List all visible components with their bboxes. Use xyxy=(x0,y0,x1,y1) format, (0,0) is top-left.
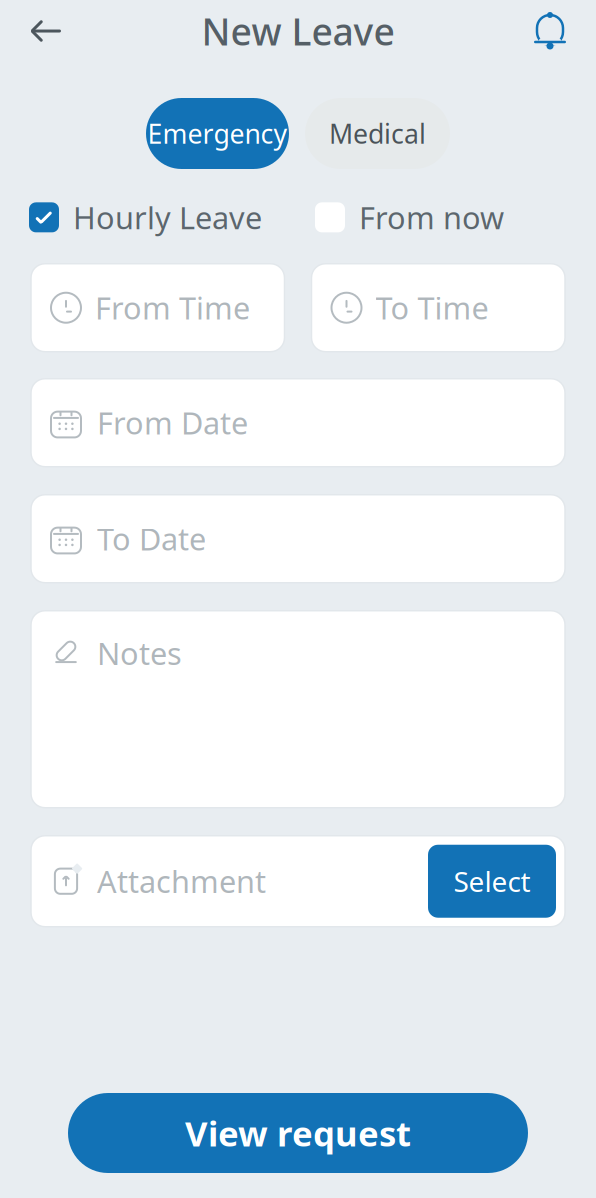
button[interactable]: Attachment xyxy=(31,836,428,927)
staticText: Medical xyxy=(329,116,426,151)
button[interactable]: From Time xyxy=(31,264,284,352)
staticText: Select xyxy=(453,863,530,900)
staticText: Notes xyxy=(97,633,182,673)
staticText: From now xyxy=(359,197,504,238)
button[interactable]: Select xyxy=(428,845,556,918)
button[interactable]: From now xyxy=(315,197,504,238)
button[interactable]: View request xyxy=(68,1093,528,1173)
staticText: Emergency xyxy=(147,116,287,151)
staticText: To Date xyxy=(97,518,206,559)
staticText: View request xyxy=(185,1110,411,1156)
staticText: Hourly Leave xyxy=(73,197,262,238)
staticText: Attachment xyxy=(97,861,266,902)
button[interactable]: Notes xyxy=(31,611,565,808)
button[interactable]: Notifications xyxy=(522,3,578,59)
button[interactable]: Hourly Leave xyxy=(29,197,262,238)
button[interactable]: To Time xyxy=(311,264,565,352)
button[interactable]: Medical xyxy=(305,98,450,169)
staticText: From Time xyxy=(95,287,250,328)
button[interactable]: Back xyxy=(18,3,74,59)
staticText: To Time xyxy=(375,287,488,328)
staticText: New Leave xyxy=(201,6,394,56)
button[interactable]: To Date xyxy=(31,495,565,583)
button[interactable]: From Date xyxy=(31,379,565,467)
staticText: From Date xyxy=(97,402,248,443)
button[interactable]: Emergency xyxy=(146,98,289,169)
